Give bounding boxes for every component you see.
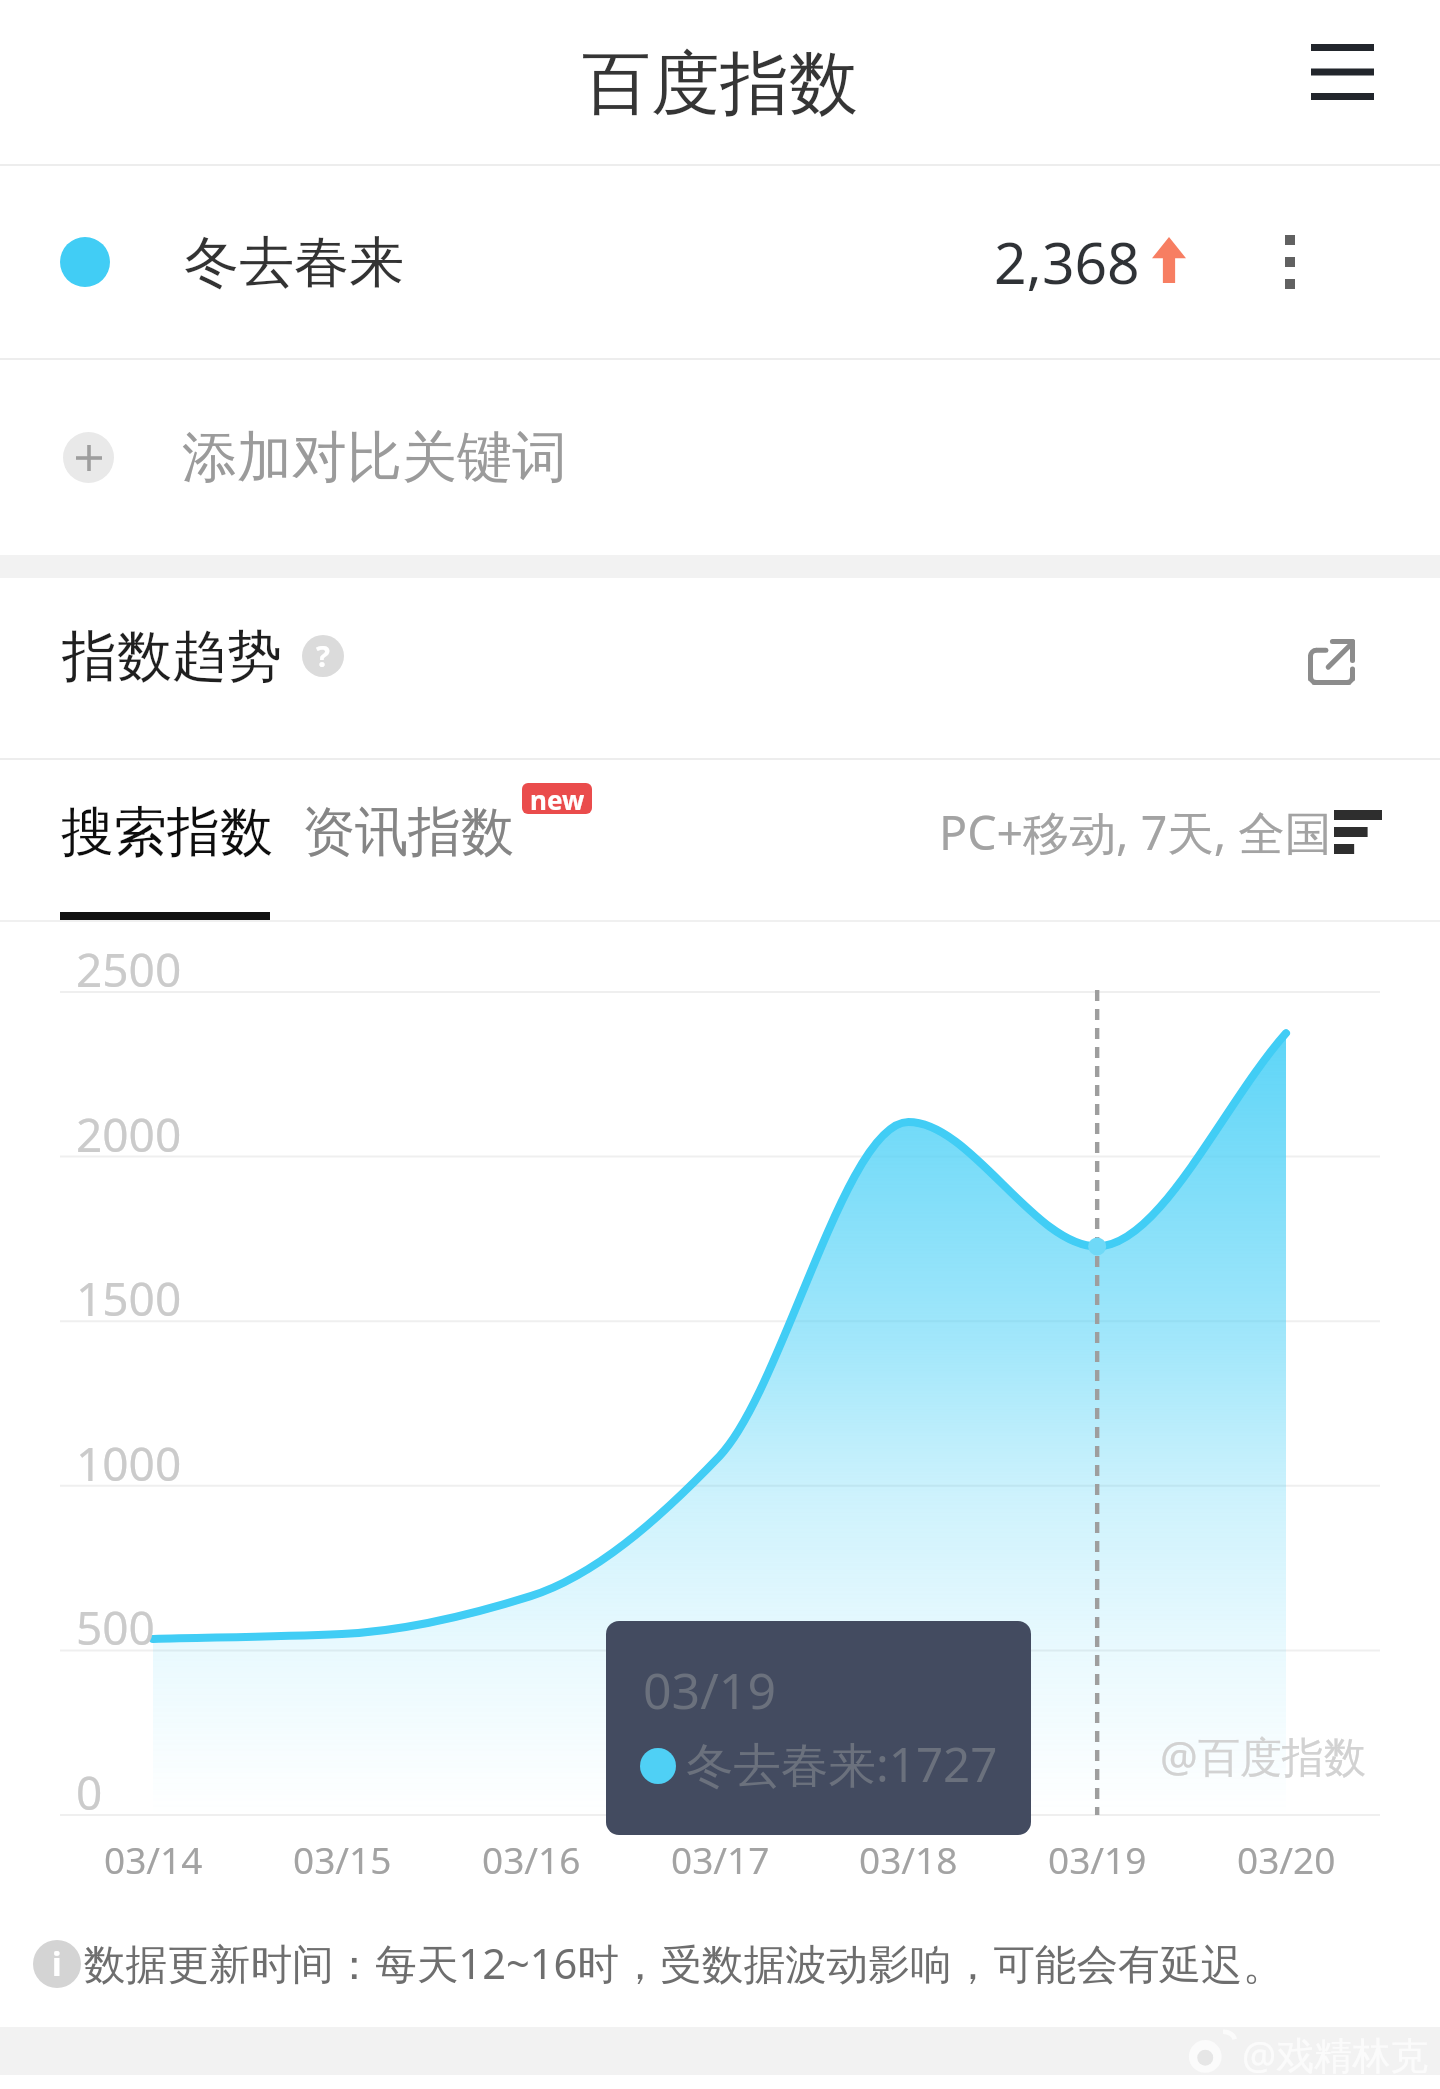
staticText: @百度指数 bbox=[1160, 1727, 1366, 1784]
staticText: 1000 bbox=[76, 1432, 182, 1495]
staticText: 添加对比关键词 bbox=[182, 423, 567, 492]
staticText: 03/18 bbox=[859, 1834, 958, 1884]
staticText: 03/16 bbox=[482, 1834, 581, 1884]
button[interactable]: 资讯指数 bbox=[302, 799, 514, 866]
button[interactable]: Menu bbox=[1287, 17, 1397, 127]
staticText: 搜索指数 bbox=[61, 799, 273, 866]
staticText: 2500 bbox=[76, 938, 182, 1001]
staticText: new bbox=[530, 783, 585, 813]
staticText: i bbox=[52, 1942, 62, 1986]
staticText: 03/14 bbox=[104, 1834, 203, 1884]
button[interactable]: Share bbox=[1286, 616, 1376, 706]
staticText: 数据更新时间：每天12~16时，受数据波动影响，可能会有延迟。 bbox=[84, 1935, 1285, 1992]
staticText: 1500 bbox=[76, 1267, 182, 1330]
button[interactable]: 冬去春来 bbox=[0, 166, 1440, 358]
button[interactable]: 搜索指数 bbox=[61, 799, 273, 866]
staticText: 2,368 bbox=[994, 223, 1140, 301]
staticText: 百度指数 bbox=[582, 41, 858, 128]
staticText: 03/19 bbox=[1048, 1834, 1147, 1884]
staticText: 冬去春来:1727 bbox=[686, 1731, 998, 1796]
staticText: 500 bbox=[76, 1596, 155, 1659]
staticText: ? bbox=[316, 636, 330, 675]
button[interactable]: PC+移动, 7天, 全国 bbox=[939, 800, 1382, 864]
staticText: PC+移动, 7天, 全国 bbox=[939, 800, 1332, 864]
staticText: 2000 bbox=[76, 1103, 182, 1166]
staticText: 指数趋势 bbox=[62, 622, 282, 691]
staticText: 03/17 bbox=[671, 1834, 770, 1884]
button[interactable]: Help bbox=[302, 635, 344, 677]
button[interactable]: 添加对比关键词 bbox=[0, 360, 1440, 555]
staticText: 0 bbox=[76, 1761, 103, 1824]
staticText: 03/20 bbox=[1237, 1834, 1336, 1884]
staticText: 冬去春来 bbox=[184, 228, 404, 297]
button[interactable]: More options bbox=[1250, 222, 1330, 302]
staticText: 03/19 bbox=[643, 1656, 776, 1724]
staticText: 03/15 bbox=[293, 1834, 392, 1884]
staticText: 资讯指数 bbox=[302, 799, 514, 866]
staticText: @戏精林克 bbox=[1242, 2028, 1429, 2074]
